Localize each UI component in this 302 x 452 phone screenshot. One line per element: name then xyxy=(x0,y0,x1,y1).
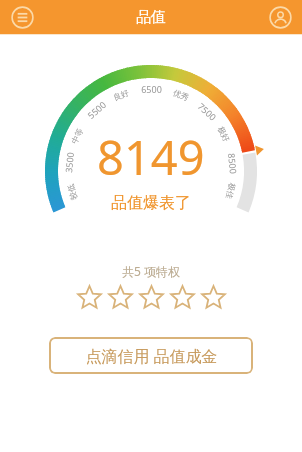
staticText: 极好 xyxy=(216,125,232,143)
button[interactable]: Privilege star xyxy=(107,284,134,311)
staticText: 共5 项特权 xyxy=(122,263,180,279)
button[interactable]: Privilege star xyxy=(76,284,103,311)
staticText: 5500 xyxy=(84,98,108,121)
button[interactable]: Privilege star xyxy=(169,284,196,311)
staticText: 品值 xyxy=(136,8,166,27)
button[interactable]: Menu xyxy=(9,4,35,30)
staticText: 7500 xyxy=(196,100,219,123)
staticText: 优秀 xyxy=(172,87,190,103)
staticText: 较低 xyxy=(65,183,79,201)
staticText: 6500 xyxy=(141,83,162,95)
button[interactable]: 点滴信用 品值成金 xyxy=(49,337,253,374)
button[interactable]: Privilege star xyxy=(200,284,227,311)
staticText: 中等 xyxy=(69,127,85,145)
staticText: 8149 xyxy=(97,125,205,189)
button[interactable]: Privilege star xyxy=(138,284,165,311)
staticText: 3500 xyxy=(62,151,76,173)
staticText: 品值爆表了 xyxy=(111,193,191,213)
staticText: 极佳 xyxy=(224,182,238,200)
staticText: 点滴信用 品值成金 xyxy=(85,345,218,367)
staticText: 8500 xyxy=(226,152,240,174)
staticText: 良好 xyxy=(112,87,130,103)
button[interactable]: Profile xyxy=(267,4,293,30)
